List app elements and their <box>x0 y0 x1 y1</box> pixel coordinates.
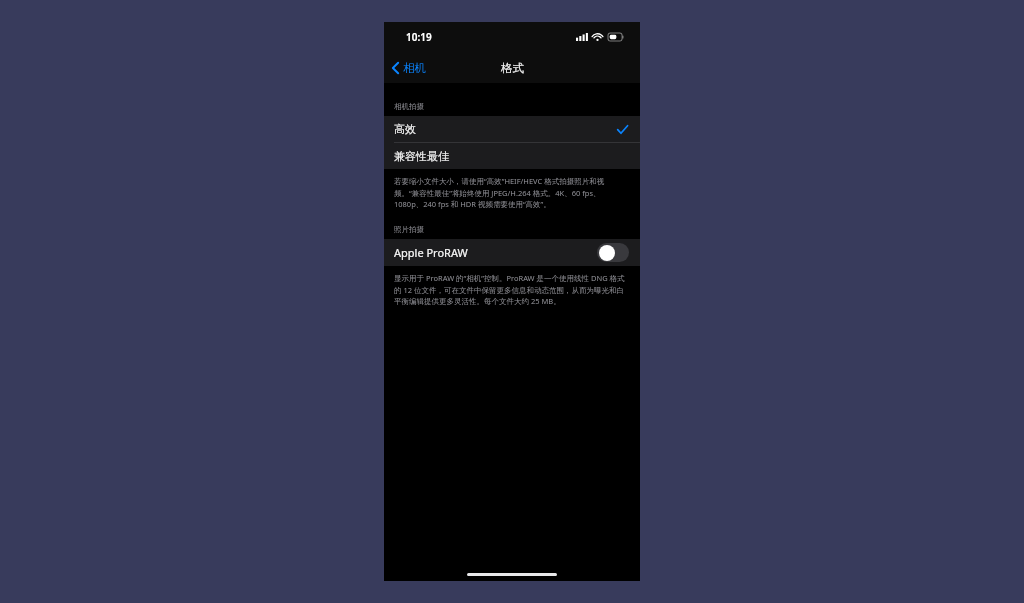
staticText: 相机拍摄 <box>394 102 640 111</box>
staticText: 兼容性最佳 <box>394 149 449 163</box>
button[interactable]: Apple ProRAW toggle, off <box>597 243 629 262</box>
staticText: 10:19 <box>406 30 432 44</box>
staticText: 高效 <box>394 122 416 136</box>
staticText: 若要缩小文件大小，请使用“高效”HEIF/HEVC 格式拍摄照片和视频。“兼容性… <box>394 176 628 209</box>
staticText: Apple ProRAW <box>394 245 468 260</box>
button[interactable]: Apple ProRAW <box>384 239 640 266</box>
staticText: 格式 <box>501 61 524 75</box>
button[interactable]: 兼容性最佳 <box>384 143 640 169</box>
button[interactable]: 高效 <box>384 116 640 142</box>
staticText: 相机 <box>403 61 426 75</box>
button[interactable]: 相机 <box>384 57 434 79</box>
staticText: 显示用于 ProRAW 的“相机”控制。ProRAW 是一个使用线性 DNG 格… <box>394 273 628 306</box>
staticText: 照片拍摄 <box>394 225 640 234</box>
